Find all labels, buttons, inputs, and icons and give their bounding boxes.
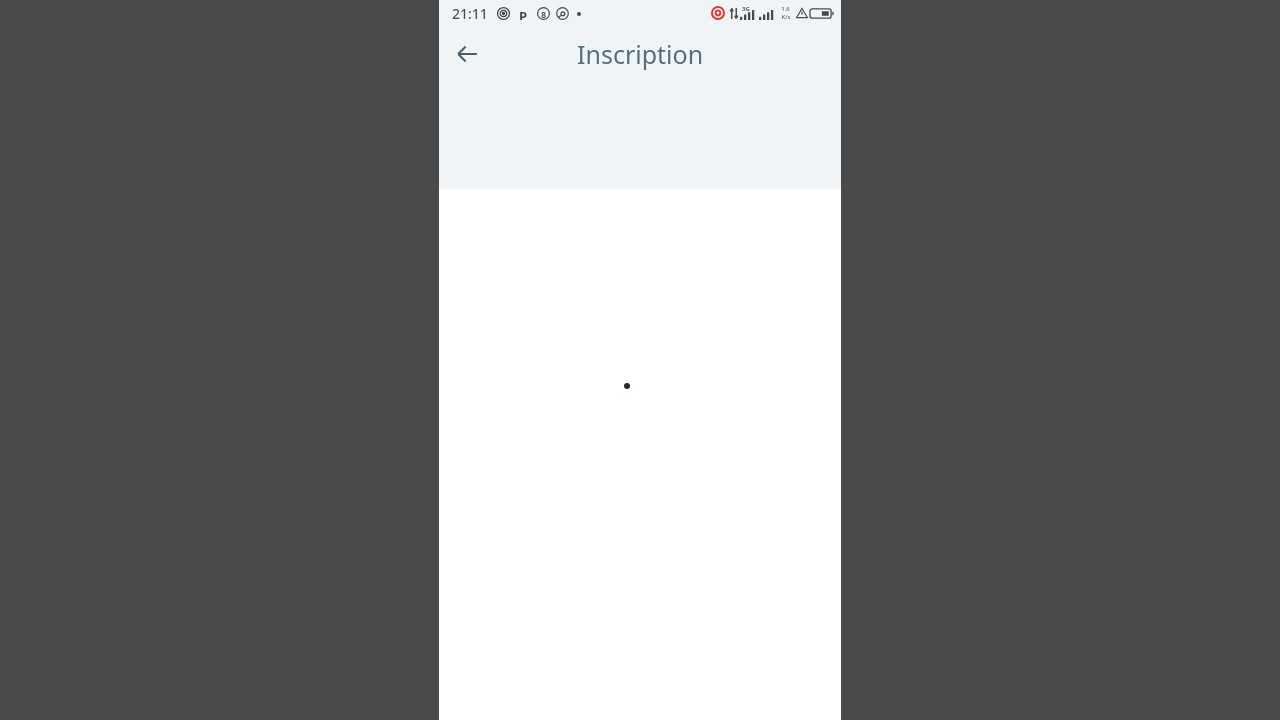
staticText: P [519, 7, 528, 20]
staticText: 1.6 [781, 5, 790, 13]
staticText: 8 [541, 8, 547, 20]
staticText: Inscription [577, 37, 704, 71]
staticText: 21:11 [452, 4, 488, 23]
staticText: K/s [781, 13, 791, 21]
button[interactable]: Back [443, 30, 491, 78]
staticText: 3G [742, 5, 750, 13]
